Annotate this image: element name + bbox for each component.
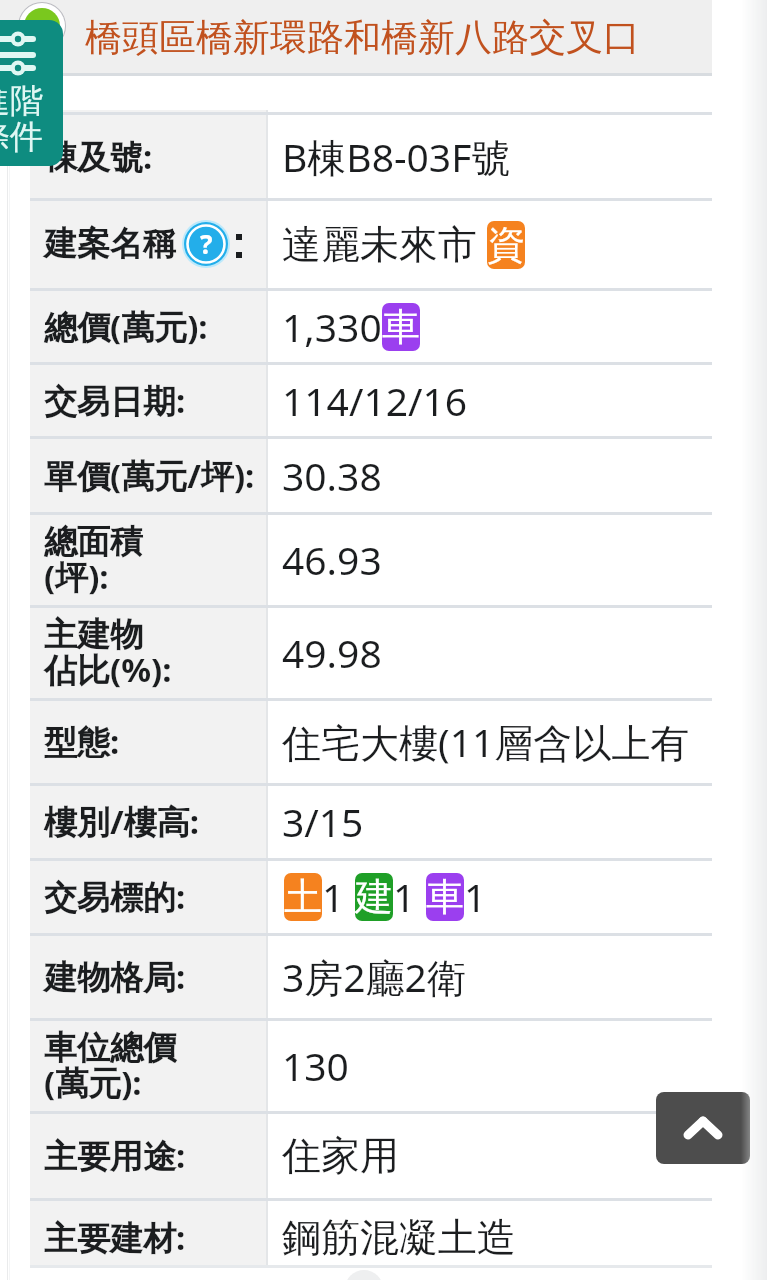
- staticText: 130: [282, 1039, 349, 1092]
- staticText: 鋼筋混凝土造: [282, 1213, 516, 1262]
- staticText: 交易日期:: [44, 378, 186, 423]
- staticText: 車: [426, 873, 464, 921]
- staticText: 30.38: [282, 449, 382, 502]
- staticText: 總面積: [44, 521, 143, 563]
- staticText: 橋頭區橋新環路和橋新八路交叉口: [85, 14, 640, 61]
- staticText: B棟B8-03F號: [282, 130, 511, 183]
- staticText: 主建物: [44, 614, 143, 656]
- staticText: 建: [355, 873, 393, 921]
- staticText: 主要用途:: [44, 1133, 186, 1178]
- staticText: 型態:: [44, 719, 120, 764]
- staticText: 46.93: [282, 533, 382, 586]
- staticText: 車位總價: [44, 1027, 176, 1069]
- staticText: 3房2廳2衛: [282, 950, 466, 1003]
- staticText: 交易標的:: [44, 874, 186, 919]
- staticText: (坪):: [44, 554, 109, 599]
- staticText: 進階: [0, 80, 43, 122]
- staticText: 樓別/樓高:: [44, 799, 199, 844]
- staticText: 單價(萬元/坪):: [44, 453, 255, 498]
- staticText: 達麗未來市: [282, 220, 477, 269]
- staticText: 住家用: [282, 1131, 399, 1180]
- staticText: 車: [382, 303, 420, 351]
- staticText: 1: [464, 870, 487, 923]
- staticText: 總價(萬元):: [44, 304, 208, 349]
- staticText: 49.98: [282, 626, 382, 679]
- staticText: 建案名稱: [44, 223, 176, 265]
- staticText: 主要建材:: [44, 1215, 186, 1260]
- staticText: 土: [284, 873, 322, 921]
- staticText: 1: [393, 870, 416, 923]
- staticText: 3/15: [282, 795, 364, 848]
- staticText: 佔比(%):: [44, 647, 172, 692]
- staticText: 資: [487, 221, 525, 269]
- staticText: 棟及號:: [44, 134, 153, 179]
- staticText: 住宅大樓(11層含以上有電梯): [282, 715, 712, 768]
- staticText: 1: [322, 870, 345, 923]
- staticText: ?: [200, 226, 213, 261]
- staticText: 1,330: [282, 300, 382, 353]
- staticText: 建物格局:: [44, 954, 186, 999]
- staticText: 114/12/16: [282, 374, 468, 427]
- button[interactable]: Scroll to top: [656, 1092, 750, 1164]
- button[interactable]: 進階條件: [0, 20, 63, 166]
- staticText: (萬元):: [44, 1060, 142, 1105]
- staticText: 條件: [0, 116, 43, 158]
